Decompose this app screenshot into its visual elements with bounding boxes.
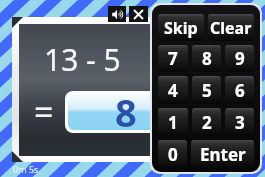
button[interactable]: 7	[158, 45, 188, 72]
button[interactable]: 3	[225, 108, 254, 136]
button[interactable]: 4	[158, 76, 188, 104]
button[interactable]: Enter	[191, 140, 254, 168]
button[interactable]: 1	[158, 108, 188, 136]
staticText: 13 - 5	[44, 39, 121, 80]
staticText: Enter	[200, 143, 246, 166]
staticText: 8	[115, 86, 137, 138]
button[interactable]: 2	[192, 108, 221, 136]
staticText: 0	[168, 143, 178, 166]
staticText: =	[34, 89, 54, 135]
button[interactable]: Skip	[158, 14, 204, 41]
staticText: 3	[235, 111, 245, 134]
staticText: Skip	[164, 17, 198, 39]
staticText: 5	[202, 79, 212, 102]
staticText: 4	[168, 79, 178, 102]
button[interactable]: 8	[192, 45, 221, 72]
staticText: 6	[235, 79, 245, 102]
button[interactable]: 6	[225, 76, 254, 104]
staticText: 2	[202, 111, 212, 134]
button[interactable]: 5	[192, 76, 221, 104]
button[interactable]: 9	[225, 45, 254, 72]
staticText: 0m 5s	[13, 163, 39, 175]
button[interactable]: Clear	[208, 14, 254, 41]
staticText: Clear	[210, 17, 252, 39]
button[interactable]: 0	[158, 140, 187, 168]
staticText: 1	[168, 111, 178, 134]
button[interactable]: Close	[129, 6, 148, 22]
staticText: 7	[168, 47, 178, 70]
staticText: 8	[202, 47, 212, 70]
staticText: 9	[235, 47, 245, 70]
button[interactable]: Sound	[108, 6, 126, 22]
